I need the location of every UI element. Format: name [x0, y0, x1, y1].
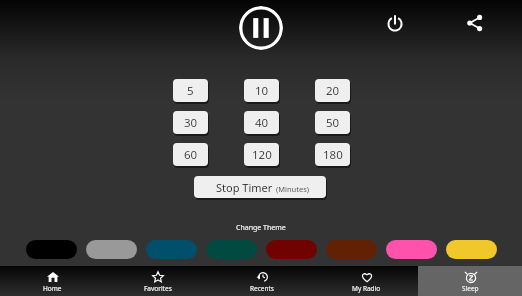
staticText: 120 [252, 147, 272, 163]
button[interactable]: Favorites [105, 266, 210, 296]
button[interactable]: Theme 0 [26, 240, 77, 259]
button[interactable]: Theme 5 [326, 240, 377, 259]
staticText: 20 [326, 83, 340, 99]
button[interactable]: Theme 2 [146, 240, 197, 259]
button[interactable]: Pause [239, 6, 283, 50]
staticText: 10 [255, 83, 269, 99]
staticText: 40 [255, 115, 269, 131]
button[interactable]: 10 [244, 79, 279, 102]
staticText: Home [43, 284, 62, 293]
button[interactable]: Share [463, 11, 487, 35]
button[interactable]: My Radio [314, 266, 418, 296]
button[interactable]: Theme 7 [446, 240, 497, 259]
button[interactable]: 40 [244, 111, 279, 134]
button[interactable]: 120 [244, 143, 279, 166]
staticText: 180 [323, 147, 343, 163]
staticText: Change Theme [236, 223, 286, 233]
staticText: (Minutes) [276, 184, 310, 194]
button[interactable]: 60 [173, 143, 208, 166]
button[interactable]: Stop Timer [194, 176, 326, 198]
button[interactable]: Theme 6 [386, 240, 437, 259]
button[interactable]: Sleep [418, 266, 522, 296]
staticText: Sleep [462, 284, 479, 293]
button[interactable]: 50 [315, 111, 350, 134]
staticText: 5 [187, 83, 194, 99]
staticText: 30 [184, 115, 198, 131]
button[interactable]: 5 [173, 79, 208, 102]
staticText: My Radio [352, 284, 381, 293]
button[interactable]: 30 [173, 111, 208, 134]
staticText: Favorites [144, 284, 172, 293]
button[interactable]: 180 [315, 143, 350, 166]
button[interactable]: 20 [315, 79, 350, 102]
staticText: 50 [326, 115, 340, 131]
staticText: 60 [184, 147, 198, 163]
button[interactable]: Recents [210, 266, 314, 296]
button[interactable]: Theme 3 [206, 240, 257, 259]
button[interactable]: Power [383, 11, 407, 35]
staticText: Recents [250, 284, 274, 293]
staticText: Stop Timer [216, 180, 273, 195]
button[interactable]: Theme 4 [266, 240, 317, 259]
button[interactable]: Home [0, 266, 105, 296]
button[interactable]: Theme 1 [86, 240, 137, 259]
